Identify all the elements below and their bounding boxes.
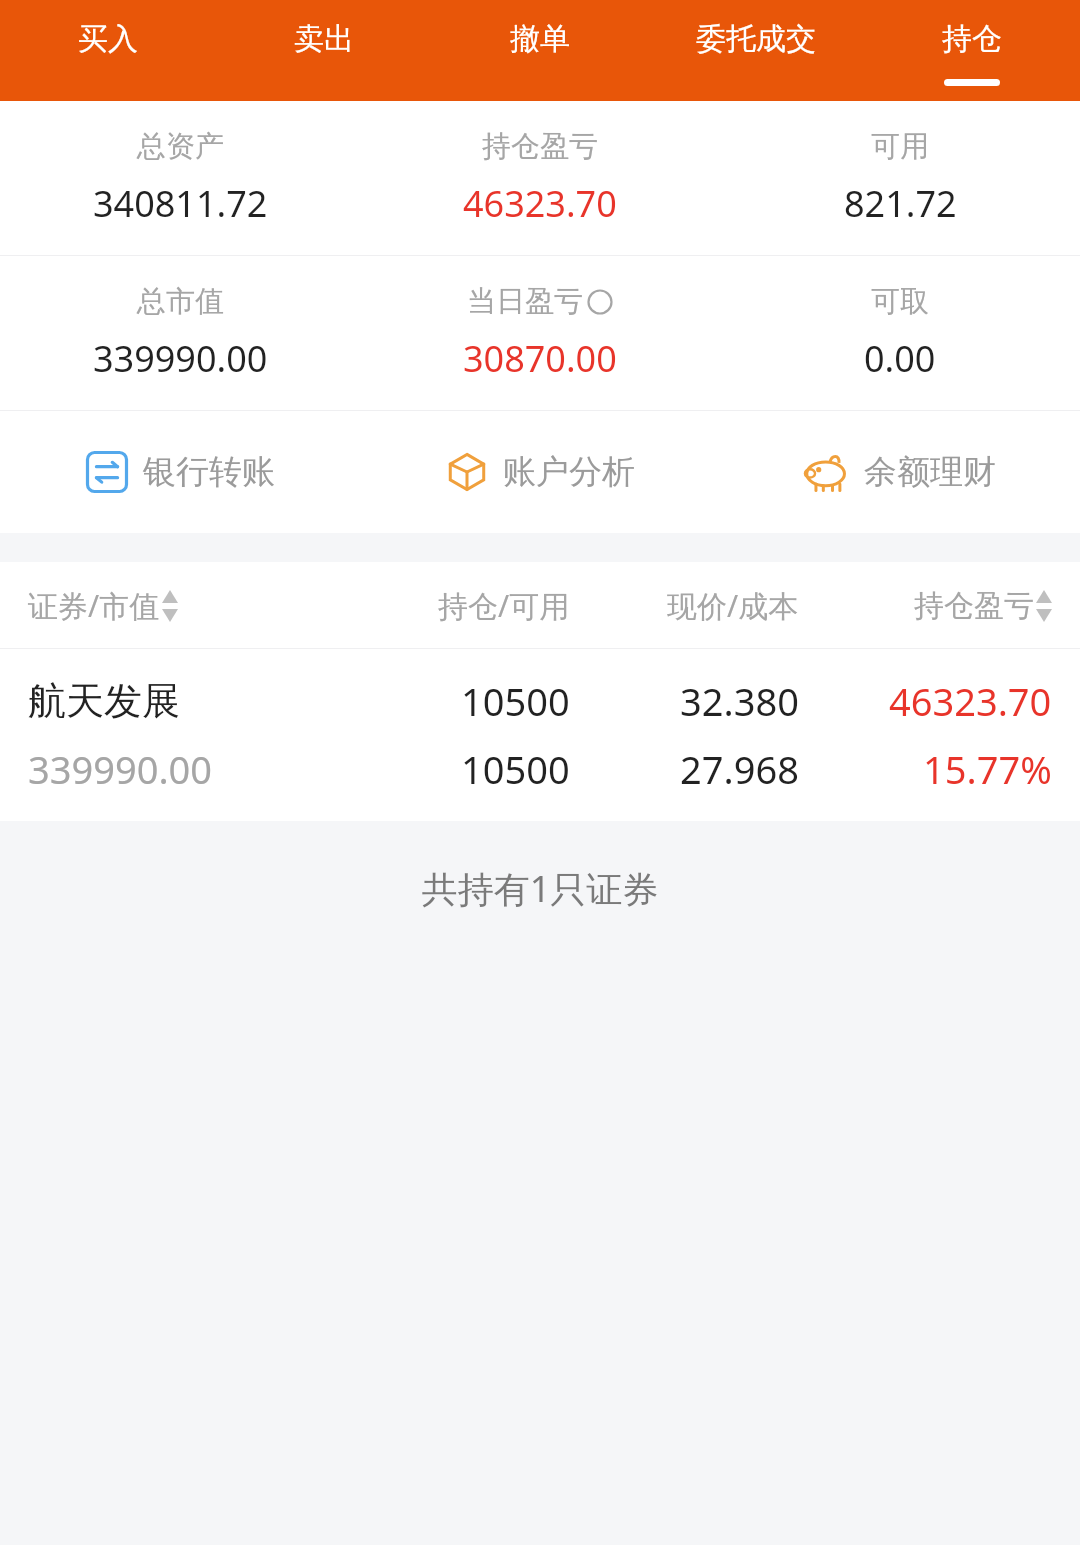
staticText: 当日盈亏	[467, 283, 583, 320]
staticText: 27.968	[680, 743, 799, 795]
staticText: 0.00	[864, 334, 936, 383]
staticText: 10500	[461, 675, 570, 727]
staticText: 余额理财	[864, 451, 996, 493]
staticText: 32.380	[680, 675, 799, 727]
staticText: 15.77%	[923, 743, 1052, 795]
staticText: 10500	[461, 743, 570, 795]
staticText: 可取	[871, 283, 929, 320]
button[interactable]: 买入	[0, 0, 216, 101]
staticText: 证券/市值	[28, 585, 160, 626]
staticText: 46323.70	[463, 179, 617, 228]
staticText: 银行转账	[143, 451, 275, 493]
staticText: 46323.70	[889, 675, 1052, 727]
button[interactable]: 撤单	[432, 0, 648, 101]
staticText: 30870.00	[463, 334, 617, 383]
button[interactable]: 持仓	[864, 0, 1080, 101]
staticText: 航天发展	[28, 677, 180, 725]
button[interactable]: 航天发展	[0, 649, 1080, 821]
button[interactable]: 证券/市值	[28, 585, 329, 626]
button[interactable]: 卖出	[216, 0, 432, 101]
staticText: 总资产	[137, 128, 224, 165]
button[interactable]: 委托成交	[648, 0, 864, 101]
staticText: 现价/成本	[667, 585, 799, 626]
staticText: 共持有1只证券	[0, 864, 1080, 913]
staticText: 821.72	[844, 179, 957, 228]
staticText: 账户分析	[503, 451, 635, 493]
staticText: 持仓/可用	[438, 585, 570, 626]
staticText: 持仓盈亏	[482, 128, 598, 165]
button[interactable]: 账户分析	[360, 411, 720, 533]
staticText: 持仓盈亏	[914, 587, 1034, 625]
staticText: 撤单	[510, 20, 570, 58]
staticText: 卖出	[294, 20, 354, 58]
staticText: 339990.00	[28, 743, 213, 795]
staticText: 339990.00	[93, 334, 268, 383]
button[interactable]: 银行转账	[0, 411, 360, 533]
staticText: 可用	[871, 128, 929, 165]
staticText: 持仓	[942, 20, 1002, 58]
staticText: 340811.72	[93, 179, 268, 228]
staticText: 买入	[78, 20, 138, 58]
staticText: 总市值	[137, 283, 224, 320]
button[interactable]: 持仓盈亏	[799, 587, 1052, 625]
staticText: 委托成交	[696, 20, 816, 58]
button[interactable]: 余额理财	[720, 411, 1080, 533]
